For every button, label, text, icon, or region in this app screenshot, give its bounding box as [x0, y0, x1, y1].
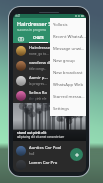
staticText: 9:41: [15, 14, 21, 18]
button[interactable]: Selina Ro: [13, 88, 86, 103]
staticText: Settings: [53, 106, 69, 112]
staticText: New group: [53, 58, 75, 64]
button[interactable]: Settings: [50, 103, 86, 115]
button[interactable]: Message unwinder: [50, 43, 86, 55]
staticText: la progres...: [29, 82, 47, 86]
staticText: CHATS: [33, 35, 44, 40]
staticText: Aunties Car Pool: [29, 145, 62, 151]
staticText: vandena di...: [29, 60, 55, 66]
staticText: Recent WhatsApp: [53, 34, 86, 40]
button[interactable]: WhatsApp Web: [50, 79, 86, 91]
button[interactable]: New group: [50, 55, 86, 67]
staticText: the pink ele: [29, 97, 47, 101]
staticText: Hairdresser: [29, 45, 52, 51]
staticText: STATUS: [61, 35, 74, 40]
staticText: Yollosis: [53, 22, 68, 28]
button[interactable]: Aunties Car Pool: [13, 143, 86, 158]
staticText: Hairdresser Sa: [17, 20, 55, 27]
button[interactable]: Hairdresser: [13, 43, 86, 58]
button[interactable]: Hairdresser Sa: [13, 18, 86, 34]
staticText: Starred messages: [53, 94, 86, 100]
button[interactable]: Camera: [13, 34, 28, 43]
staticText: stand out pink elit: [17, 130, 47, 135]
staticText: Message unwinder: [53, 46, 86, 52]
staticText: success in progress: [17, 28, 47, 32]
staticText: title congr...: [29, 67, 47, 71]
button[interactable]: Aamir p...: [13, 73, 86, 88]
button[interactable]: New chat: [70, 148, 83, 161]
button[interactable]: STATUS: [49, 34, 86, 43]
button[interactable]: New broadcast: [50, 67, 86, 79]
button[interactable]: Lorem Car Pro: [13, 158, 86, 172]
button[interactable]: Starred messages: [50, 91, 86, 103]
button[interactable]: Yollosis: [50, 19, 86, 31]
staticText: hall: [29, 152, 35, 156]
staticText: Lorem Car Pro: [29, 160, 58, 166]
button[interactable]: Recent WhatsApp: [50, 31, 86, 43]
staticText: adipiscing elit sit amet consectetuer: [17, 135, 65, 139]
button[interactable]: vandena di...: [13, 58, 86, 73]
staticText: New broadcast: [53, 70, 83, 76]
staticText: Selina Ro: [29, 90, 47, 96]
staticText: none, go to...: [29, 52, 49, 56]
staticText: WhatsApp Web: [53, 82, 84, 88]
staticText: Aamir p...: [29, 75, 48, 81]
button[interactable]: CHATS: [28, 34, 49, 43]
